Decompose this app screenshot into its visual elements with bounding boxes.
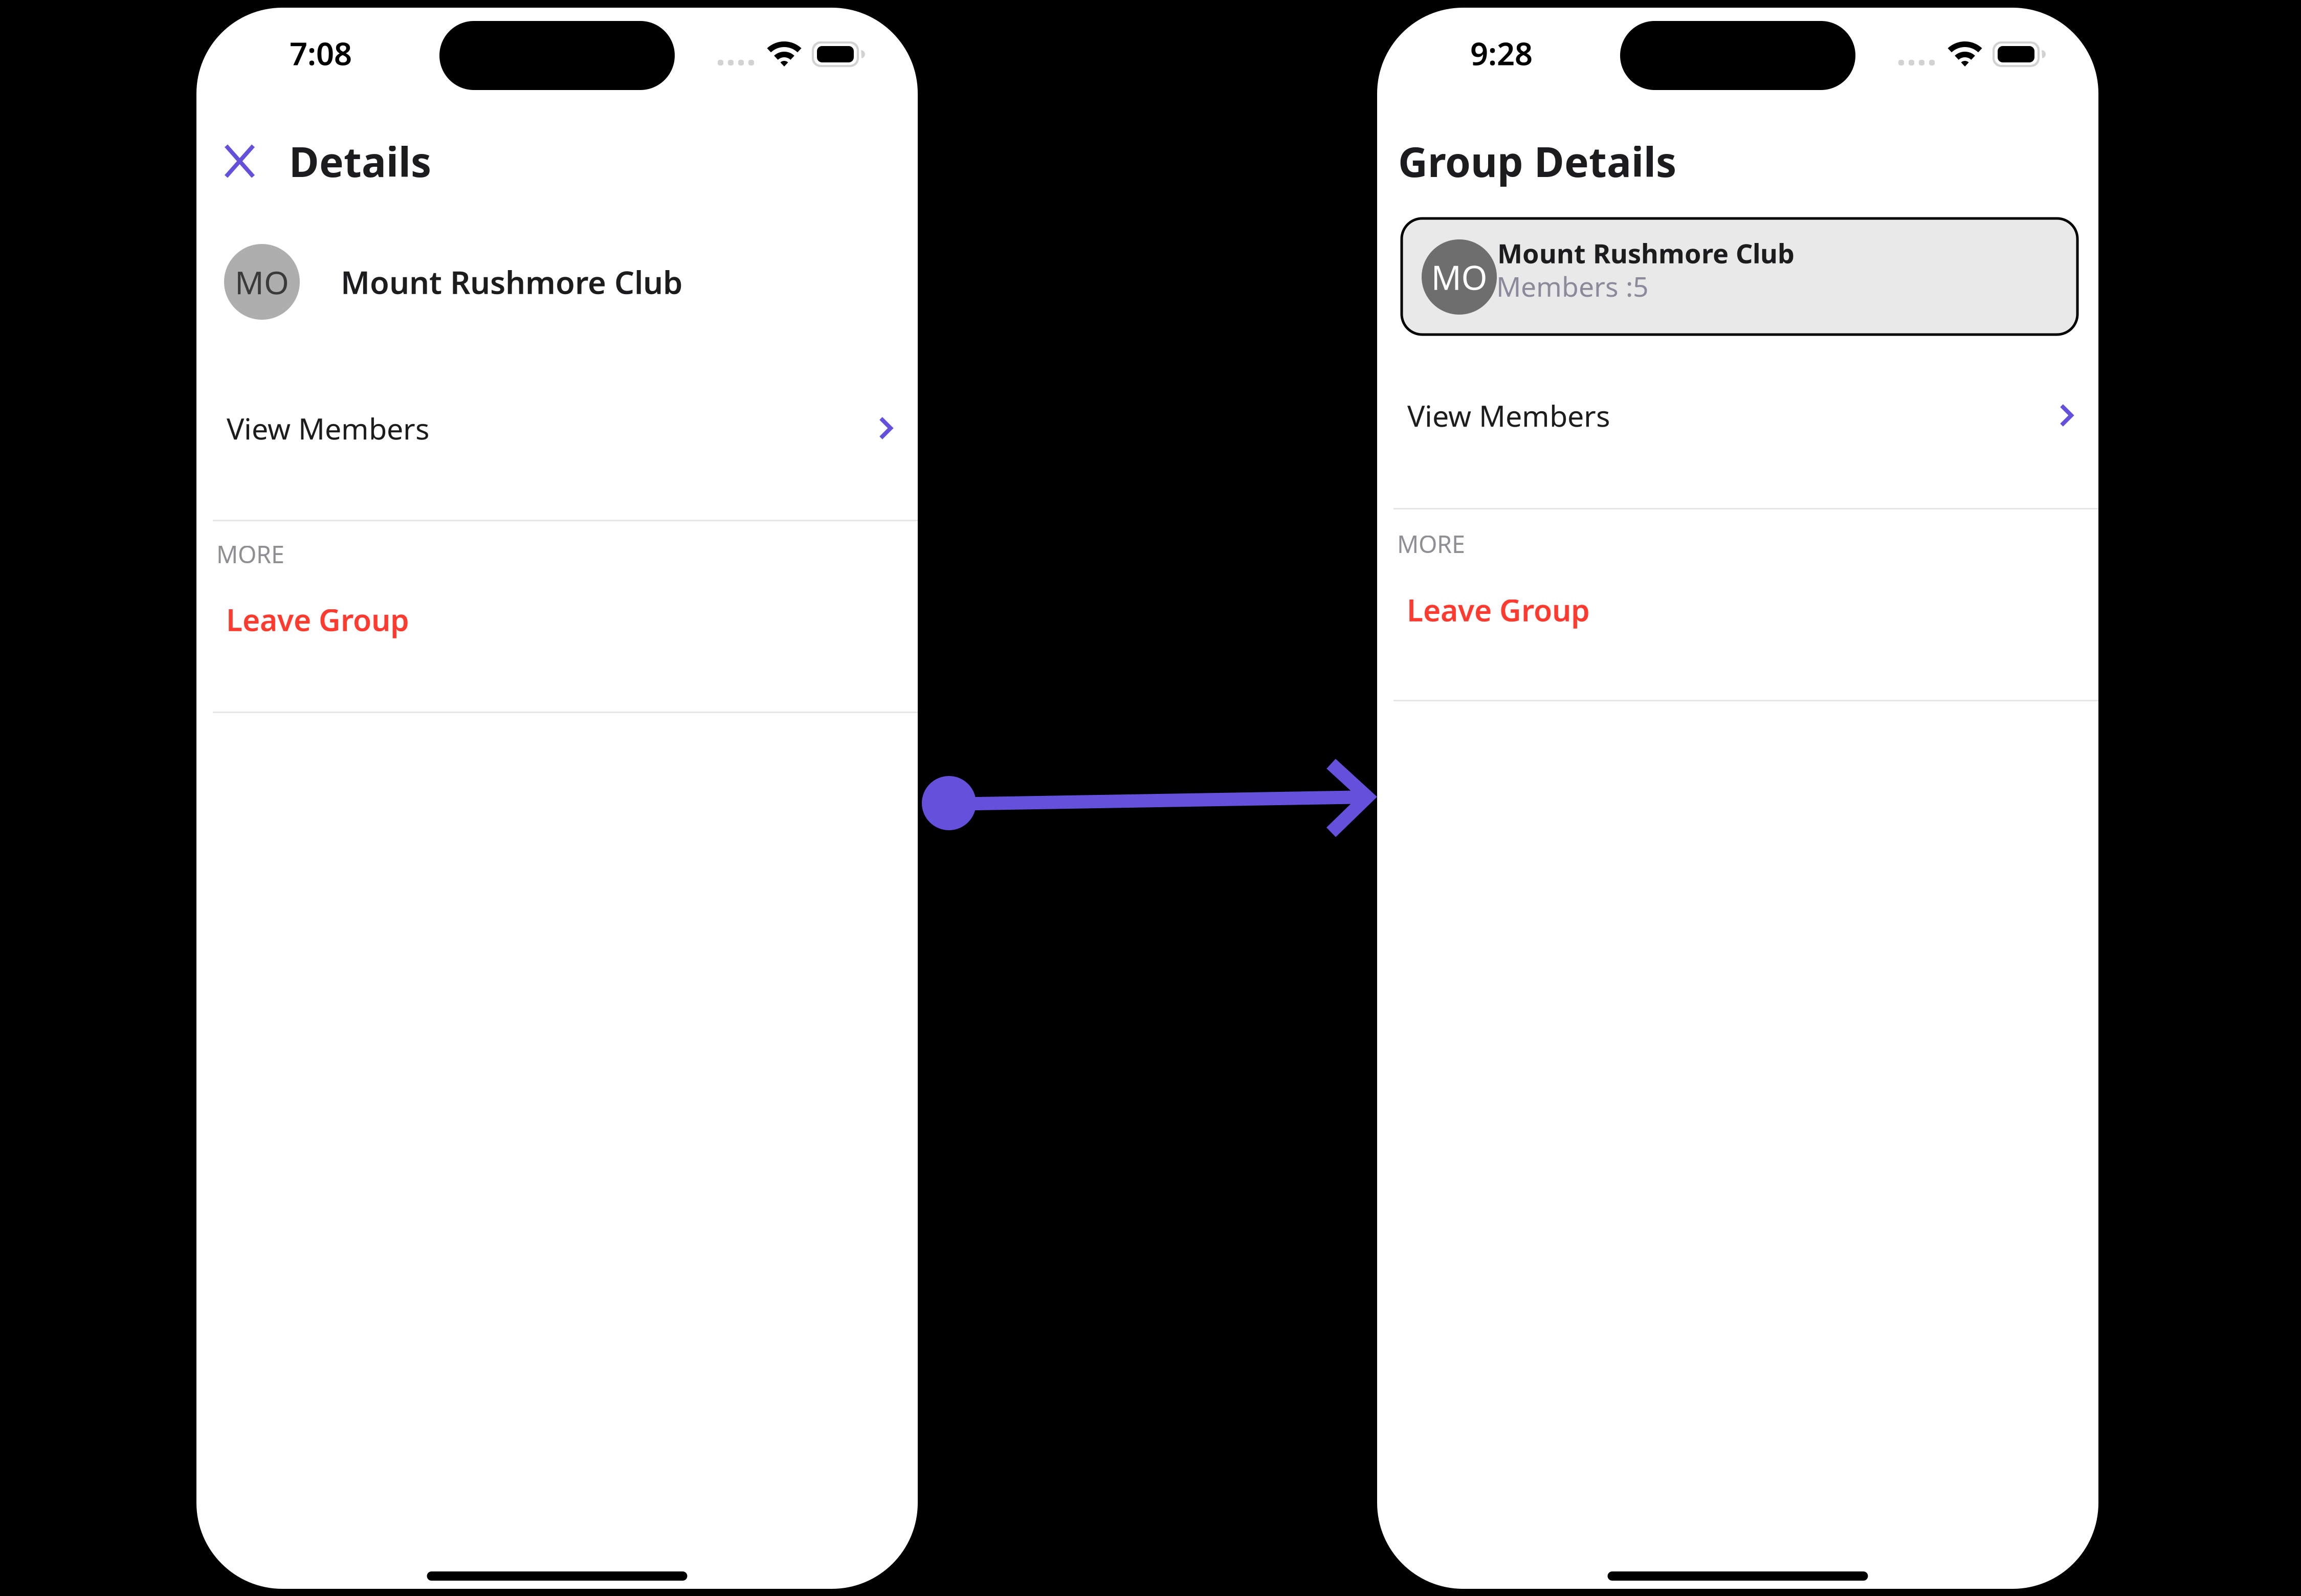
staticText: MORE <box>1397 528 1465 560</box>
staticText: Mount Rushmore Club <box>341 261 682 303</box>
button[interactable]: MO <box>1402 218 2077 335</box>
staticText: Mount Rushmore Club <box>1497 235 1795 271</box>
staticText: View Members <box>227 409 429 448</box>
button[interactable]: View Members <box>1377 390 2098 441</box>
staticText: Leave Group <box>1407 590 1590 630</box>
staticText: Details <box>289 134 431 188</box>
staticText: Leave Group <box>226 600 409 639</box>
staticText: Group Details <box>1398 134 1676 188</box>
staticText: Members :5 <box>1496 268 1649 304</box>
staticText: View Members <box>1407 396 1610 435</box>
staticText: 7:08 <box>290 32 352 74</box>
staticText: 9:28 <box>1470 32 1533 74</box>
button[interactable]: Leave Group <box>196 606 918 633</box>
staticText: MORE <box>216 538 284 570</box>
staticText: MO <box>235 261 289 303</box>
button[interactable]: View Members <box>196 403 918 454</box>
staticText: MO <box>1431 255 1487 299</box>
button[interactable]: Close <box>224 143 255 179</box>
button[interactable]: Leave Group <box>1377 596 2098 624</box>
